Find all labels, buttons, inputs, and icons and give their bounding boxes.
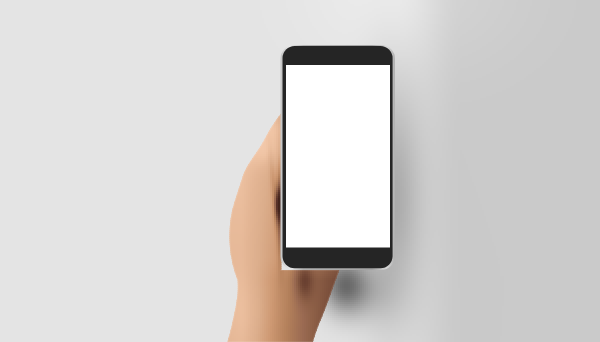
other: Hand holding a smartphone with blank scr… (0, 0, 600, 342)
